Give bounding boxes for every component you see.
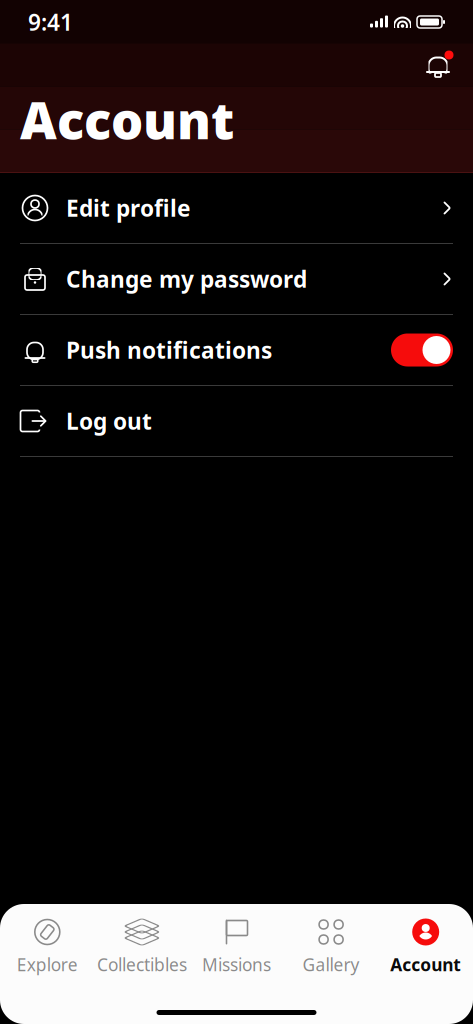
staticText: Push notifications xyxy=(66,335,272,365)
staticText: Account xyxy=(20,86,234,153)
staticText: Gallery xyxy=(303,953,360,976)
button[interactable]: Missions xyxy=(189,904,284,976)
button[interactable]: Edit profile xyxy=(0,173,473,244)
staticText: Explore xyxy=(17,953,78,976)
button[interactable]: Change my password xyxy=(0,244,473,315)
button[interactable]: Push notifications xyxy=(0,315,473,386)
staticText: Log out xyxy=(66,406,152,436)
button[interactable]: Notifications xyxy=(421,47,473,81)
button[interactable]: Explore xyxy=(0,904,95,976)
button[interactable]: Log out xyxy=(0,386,473,457)
button[interactable]: Gallery xyxy=(284,904,378,976)
staticText: Edit profile xyxy=(66,193,191,223)
staticText: Missions xyxy=(202,953,271,976)
staticText: 9:41 xyxy=(28,7,73,37)
staticText: Collectibles xyxy=(97,953,187,976)
button[interactable]: Collectibles xyxy=(95,904,189,976)
button[interactable]: Account xyxy=(378,904,473,976)
staticText: Account xyxy=(390,953,461,976)
staticText: Change my password xyxy=(66,264,307,294)
